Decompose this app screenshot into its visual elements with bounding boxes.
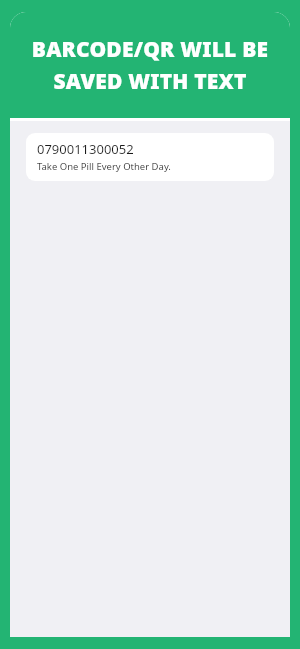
- button[interactable]: 0790011300052: [26, 133, 274, 181]
- staticText: BARCODE/QR WILL BE SAVED WITH TEXT: [22, 35, 278, 95]
- staticText: 0790011300052: [37, 140, 134, 158]
- button[interactable]: BARCODE/QR WILL BE SAVED WITH TEXT: [10, 12, 290, 118]
- staticText: Take One Pill Every Other Day.: [37, 160, 171, 173]
